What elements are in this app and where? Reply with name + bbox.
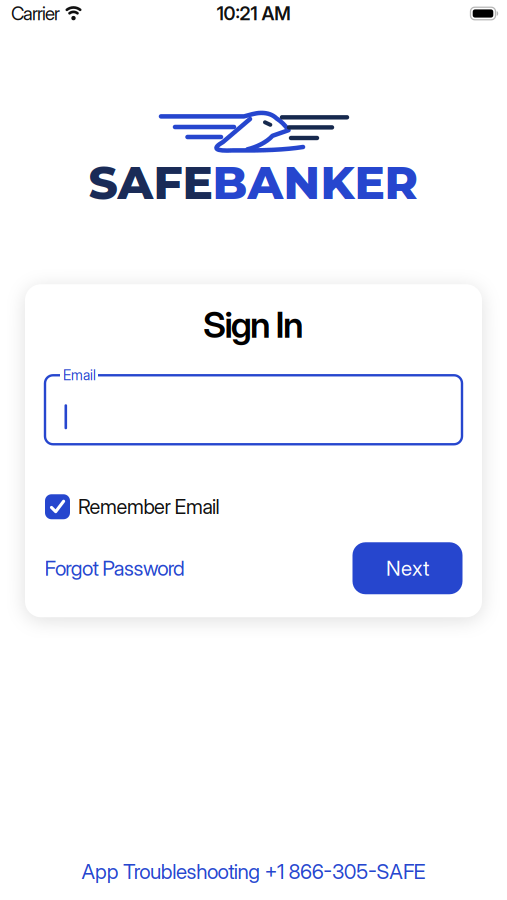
button[interactable]: Remember Email (45, 494, 462, 519)
staticText: BANKER (212, 155, 418, 210)
button[interactable]: Next (352, 542, 462, 594)
staticText: Email (63, 367, 96, 384)
staticText: Sign In (203, 303, 304, 347)
button[interactable]: Email (45, 375, 462, 444)
staticText: Next (386, 556, 429, 581)
staticText: 10:21 AM (217, 2, 290, 25)
staticText: Forgot Password (44, 556, 185, 581)
staticText: Remember Email (78, 495, 219, 519)
button[interactable]: Forgot Password (44, 556, 185, 581)
button[interactable]: App Troubleshooting +1 866-305-SAFE (81, 859, 425, 884)
staticText: SAFE (88, 155, 212, 210)
staticText: App Troubleshooting +1 866-305-SAFE (81, 859, 425, 884)
staticText: Carrier (11, 2, 60, 25)
